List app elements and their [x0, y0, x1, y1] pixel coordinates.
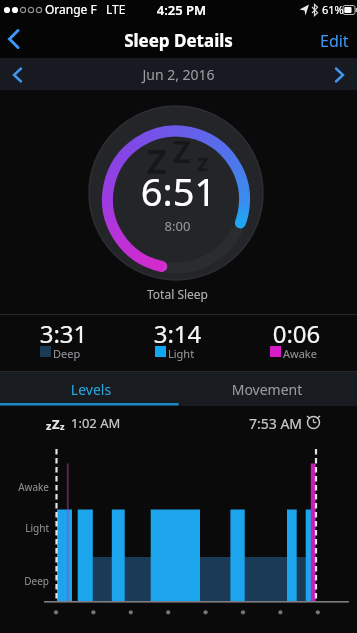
staticText: LTE: [106, 1, 126, 17]
staticText: Deep: [53, 346, 81, 361]
button[interactable]: Movement: [178, 372, 357, 406]
staticText: 3:14: [147, 317, 208, 350]
staticText: 61%: [322, 2, 344, 17]
button[interactable]: [0, 20, 36, 58]
staticText: 1:02 AM: [71, 414, 121, 432]
staticText: Movement: [178, 380, 356, 399]
staticText: Z: [52, 415, 60, 433]
staticText: Sleep Details: [0, 29, 357, 52]
staticText: Orange F: [45, 1, 97, 17]
button[interactable]: Jun 2, 2016: [0, 58, 357, 90]
staticText: Z: [173, 130, 191, 172]
staticText: z: [197, 146, 209, 177]
staticText: Edit: [320, 30, 349, 52]
staticText: 4:25 PM: [3, 1, 357, 19]
staticText: Awake: [0, 480, 49, 494]
staticText: 6:51: [0, 165, 357, 217]
button[interactable]: Levels: [0, 372, 178, 406]
staticText: Awake: [283, 346, 317, 361]
button[interactable]: Edit: [313, 20, 357, 58]
staticText: 0:06: [266, 317, 327, 350]
staticText: Light: [168, 346, 195, 361]
staticText: Z: [147, 138, 167, 184]
staticText: 8:00: [0, 217, 356, 235]
staticText: Light: [0, 521, 49, 535]
staticText: Jun 2, 2016: [0, 65, 357, 84]
staticText: Levels: [2, 380, 180, 399]
staticText: z: [46, 418, 52, 433]
staticText: z: [60, 420, 65, 432]
staticText: Total Sleep: [0, 286, 356, 302]
staticText: Deep: [0, 574, 49, 588]
staticText: 3:31: [33, 317, 94, 350]
staticText: 7:53 AM: [249, 414, 303, 433]
